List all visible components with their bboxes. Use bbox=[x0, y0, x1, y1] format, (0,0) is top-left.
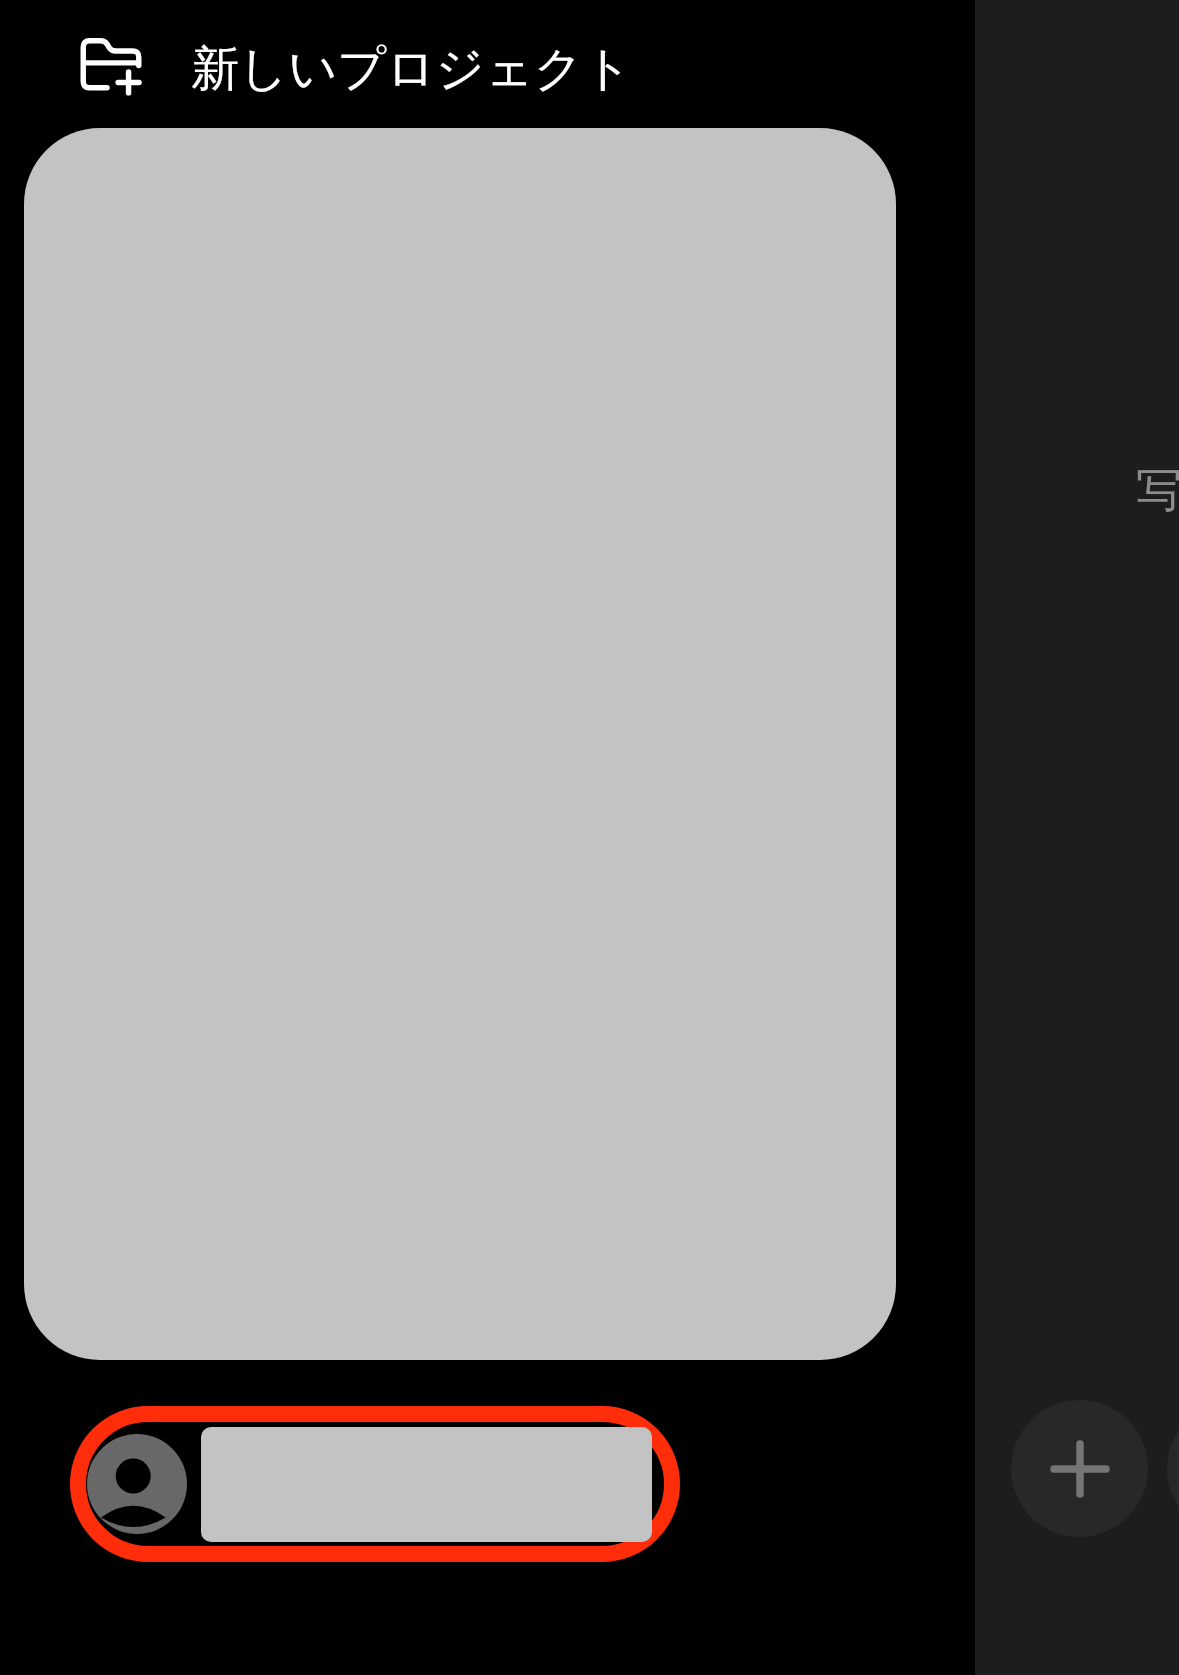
button[interactable] bbox=[70, 1406, 680, 1562]
staticText: 新しいプロジェクト bbox=[191, 39, 632, 99]
staticText: 写真 bbox=[1136, 462, 1179, 520]
button[interactable]: 新しいプロジェクト bbox=[191, 0, 632, 128]
button[interactable]: Add bbox=[1011, 1400, 1148, 1537]
button[interactable]: More options bbox=[1167, 1400, 1179, 1537]
button[interactable]: Create new folder bbox=[49, 2, 173, 126]
button[interactable] bbox=[24, 128, 896, 1360]
